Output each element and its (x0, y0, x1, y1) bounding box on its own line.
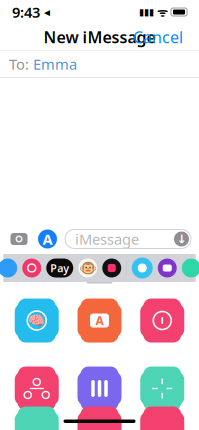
staticText: Emma (33, 54, 77, 74)
button[interactable]: Animoji (78, 258, 97, 277)
button[interactable]: To: (0, 50, 199, 77)
staticText: Cancel (133, 26, 183, 48)
button[interactable]: Cancel (125, 20, 191, 54)
staticText: A (95, 312, 103, 328)
button[interactable]: Apple Pay (46, 258, 73, 277)
button[interactable]: iMessage (65, 229, 191, 248)
staticText: ᯤ (154, 4, 171, 20)
staticText: 🧠 (28, 313, 45, 328)
button[interactable]: iMessage Apps (38, 229, 57, 249)
staticText: iMessage (75, 229, 139, 249)
staticText: 9:43 (12, 2, 40, 22)
staticText: New iMessage (43, 26, 155, 48)
staticText: ◂ (40, 5, 50, 19)
staticText: ▮▮▮ (139, 7, 154, 17)
button[interactable]: Stickers app (132, 257, 153, 278)
button[interactable]: Camera (8, 229, 30, 249)
button[interactable]: Music app (102, 258, 121, 277)
staticText: 🐵 (79, 260, 97, 276)
button[interactable]: Twitch app (158, 258, 177, 277)
button[interactable]: Photo search app (22, 258, 41, 277)
staticText: A (42, 229, 52, 249)
staticText: ↓ (176, 232, 186, 246)
staticText: Pay (50, 261, 69, 275)
staticText: To: (9, 54, 29, 74)
